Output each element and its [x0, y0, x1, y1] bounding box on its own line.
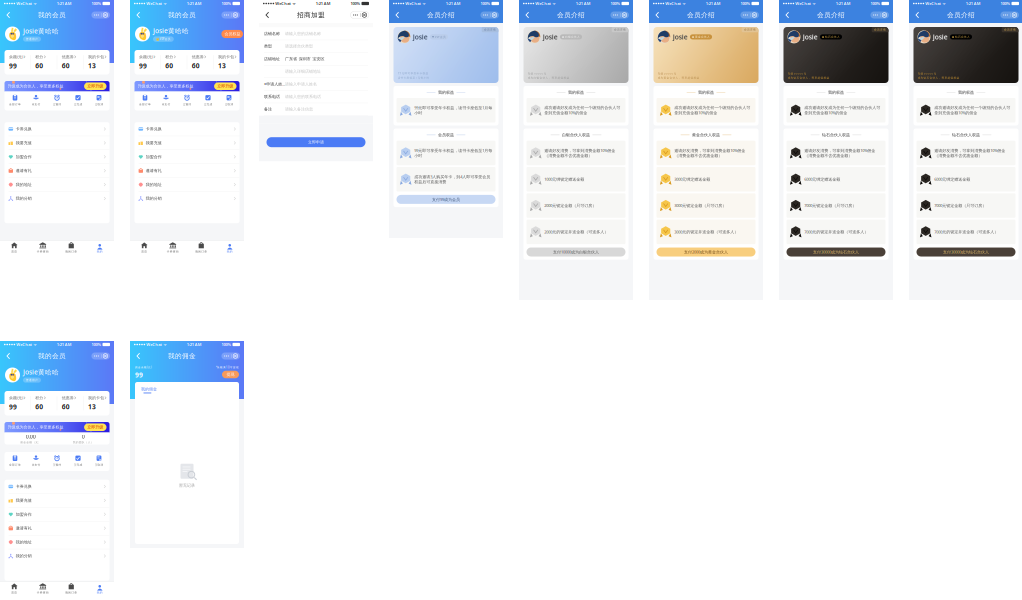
button[interactable]: 我的订单 — [187, 241, 215, 254]
button[interactable]: 我的分销 — [134, 192, 239, 205]
button[interactable]: Back — [653, 9, 662, 21]
button[interactable]: 首页 — [0, 241, 28, 254]
button[interactable]: 支付30000成为钻石合伙人 — [916, 247, 1015, 256]
button[interactable]: Back — [4, 350, 13, 362]
button[interactable]: 卡券查询 — [28, 241, 57, 254]
button[interactable]: 我的地址 — [4, 178, 109, 191]
button[interactable]: Back — [783, 9, 792, 21]
button[interactable]: 加盟合作 — [134, 150, 239, 164]
button[interactable]: More — [92, 352, 101, 359]
button[interactable]: More — [741, 11, 750, 18]
button[interactable]: 我的 — [85, 241, 114, 254]
button[interactable]: Back — [4, 9, 13, 21]
button[interactable]: 加盟合作 — [4, 150, 109, 164]
button[interactable]: 我的 — [215, 241, 244, 254]
button[interactable]: 我要充值 — [4, 494, 109, 507]
button[interactable]: 会员权益 — [221, 30, 243, 38]
button[interactable]: 待支付 — [25, 91, 46, 110]
button[interactable]: 我要充值 — [134, 136, 239, 150]
button[interactable]: 我的卡包 — [83, 50, 109, 74]
button[interactable]: 优惠券 — [187, 50, 213, 74]
button[interactable]: 我的订单 — [57, 241, 85, 254]
button[interactable]: 已取消 — [218, 91, 239, 110]
button[interactable]: Close — [750, 11, 758, 18]
button[interactable]: 待支付 — [155, 91, 176, 110]
button[interactable]: Close — [620, 11, 628, 18]
button[interactable]: Close — [231, 11, 239, 18]
button[interactable]: 全部订单 — [4, 91, 25, 110]
button[interactable]: 优惠券 — [57, 391, 83, 415]
button[interactable]: 已预约 — [46, 91, 67, 110]
button[interactable]: 已完成 — [67, 452, 88, 471]
button[interactable]: More — [92, 11, 101, 18]
button[interactable]: 会员详情 — [1002, 27, 1018, 32]
button[interactable]: 卡券兑换 — [4, 122, 109, 136]
button[interactable]: 支付10000成为白银合伙人 — [526, 247, 625, 256]
button[interactable]: 首页 — [130, 241, 158, 254]
button[interactable]: Close — [101, 11, 109, 18]
button[interactable]: 加盟合作 — [4, 507, 109, 521]
button[interactable]: More — [351, 11, 360, 18]
button[interactable]: 我要充值 — [4, 136, 109, 150]
button[interactable]: 已取消 — [88, 91, 109, 110]
button[interactable]: 余额(元) — [4, 50, 30, 74]
button[interactable]: Close — [490, 11, 498, 18]
button[interactable]: 余额(元) — [134, 50, 160, 74]
button[interactable]: 已预约 — [46, 452, 67, 471]
button[interactable]: 支付99成为会员 — [396, 195, 495, 204]
button[interactable]: 支付2000成为黄金合伙人 — [656, 247, 755, 256]
button[interactable]: 升级成为合伙人，享受更多权益 — [4, 81, 109, 91]
button[interactable]: Close — [231, 352, 239, 359]
button[interactable]: 全部订单 — [134, 91, 155, 110]
button[interactable]: 我的卡包 — [83, 391, 109, 415]
button[interactable]: 立即申请 — [266, 137, 365, 147]
button[interactable]: 提现 — [222, 371, 239, 378]
button[interactable]: More — [611, 11, 620, 18]
button[interactable]: 已取消 — [88, 452, 109, 471]
button[interactable]: 已完成 — [197, 91, 218, 110]
button[interactable]: 会员详情 — [872, 27, 888, 32]
button[interactable]: 已预约 — [176, 91, 197, 110]
button[interactable]: 我的分销 — [4, 549, 109, 563]
button[interactable]: 积分 — [31, 50, 57, 74]
button[interactable]: 我的地址 — [134, 178, 239, 191]
button[interactable]: Close — [101, 352, 109, 359]
button[interactable]: Back — [523, 9, 532, 21]
button[interactable]: 积分 — [161, 50, 187, 74]
button[interactable]: More — [481, 11, 490, 18]
button[interactable]: 优惠券 — [57, 50, 83, 74]
button[interactable]: 邀请有礼 — [4, 164, 109, 177]
button[interactable]: 卡券查询 — [158, 241, 187, 254]
button[interactable]: Back — [134, 9, 143, 21]
button[interactable]: 会员详情 — [742, 27, 758, 32]
button[interactable]: More — [222, 352, 231, 359]
button[interactable]: Back — [913, 9, 922, 21]
button[interactable]: 会员详情 — [482, 27, 498, 32]
button[interactable]: 首页 — [0, 582, 28, 595]
button[interactable]: More — [222, 11, 231, 18]
button[interactable]: 卡券兑换 — [134, 122, 239, 136]
button[interactable]: 我的订单 — [57, 582, 85, 595]
button[interactable]: 会员详情 — [612, 27, 628, 32]
button[interactable]: 邀请有礼 — [4, 521, 109, 535]
button[interactable]: Back — [393, 9, 402, 21]
button[interactable]: 已完成 — [67, 91, 88, 110]
button[interactable]: 我的 — [85, 582, 114, 595]
button[interactable]: Close — [880, 11, 888, 18]
button[interactable]: 卡券兑换 — [4, 480, 109, 493]
button[interactable]: Close — [1010, 11, 1018, 18]
button[interactable]: More — [1001, 11, 1010, 18]
button[interactable]: 我的卡包 — [213, 50, 239, 74]
button[interactable]: 待支付 — [25, 452, 46, 471]
button[interactable]: 邀请有礼 — [134, 164, 239, 177]
button[interactable]: Back — [134, 350, 143, 362]
button[interactable]: 全部订单 — [4, 452, 25, 471]
button[interactable]: More — [871, 11, 880, 18]
button[interactable]: 支付30000成为钻石合伙人 — [786, 247, 885, 256]
button[interactable]: 升级成为合伙人，享受更多权益 — [134, 81, 239, 91]
button[interactable]: 我的分销 — [4, 192, 109, 205]
button[interactable]: 积分 — [31, 391, 57, 415]
button[interactable]: Close — [360, 11, 368, 18]
button[interactable]: Back — [263, 9, 272, 21]
button[interactable]: 余额(元) — [4, 391, 30, 415]
